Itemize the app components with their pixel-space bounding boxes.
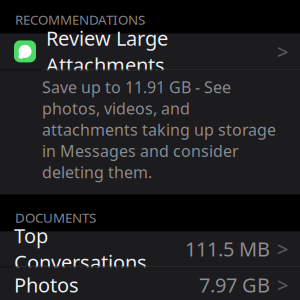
staticText: Review Large Attachments xyxy=(46,25,168,78)
staticText: 7.97 GB xyxy=(199,271,270,298)
staticText: Top Conversations xyxy=(14,222,147,275)
staticText: DOCUMENTS xyxy=(15,209,96,226)
button[interactable]: Review Large Attachments xyxy=(0,33,300,69)
staticText: Photos xyxy=(14,271,79,298)
staticText: > xyxy=(277,38,288,65)
staticText: 111.5 MB xyxy=(185,235,270,262)
button[interactable]: Photos xyxy=(0,267,300,300)
staticText: > xyxy=(277,235,288,262)
staticText: Save up to 11.91 GB - See photos, videos… xyxy=(42,76,276,183)
button[interactable]: Top Conversations xyxy=(0,231,300,266)
staticText: > xyxy=(277,271,288,298)
staticText: RECOMMENDATIONS xyxy=(15,11,145,28)
